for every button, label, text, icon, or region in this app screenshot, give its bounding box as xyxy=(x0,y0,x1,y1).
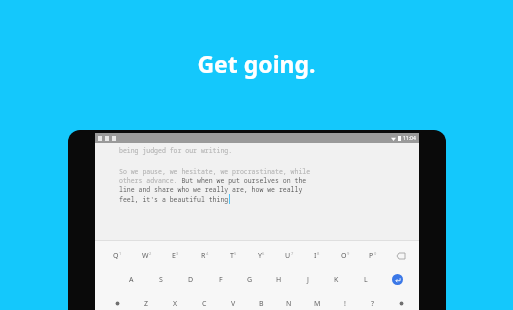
button[interactable]: K xyxy=(322,273,351,286)
staticText: 8 xyxy=(317,251,320,256)
staticText: F xyxy=(219,275,223,285)
staticText: Y xyxy=(258,251,262,261)
button[interactable]: D xyxy=(176,273,206,286)
button[interactable]: S xyxy=(146,273,176,286)
staticText: P xyxy=(369,251,374,261)
staticText: being judged for our writing. xyxy=(119,146,233,155)
button[interactable]: Y xyxy=(247,249,275,262)
staticText: line and share who we really are, how we… xyxy=(119,185,303,194)
staticText: A xyxy=(129,275,134,285)
staticText: V xyxy=(231,299,236,309)
button[interactable]: M xyxy=(303,297,331,310)
staticText: E xyxy=(172,251,176,261)
staticText: D xyxy=(188,275,194,285)
staticText: Q xyxy=(113,251,119,261)
button[interactable]: U xyxy=(275,249,303,262)
staticText: X xyxy=(173,299,178,309)
staticText: R xyxy=(201,251,206,261)
button[interactable]: Shift xyxy=(103,297,132,310)
button[interactable]: T xyxy=(219,249,247,262)
button[interactable]: ! xyxy=(331,297,359,310)
button[interactable]: R xyxy=(190,249,219,262)
staticText: 6 xyxy=(262,251,265,256)
staticText: W xyxy=(142,251,149,261)
button[interactable]: O xyxy=(331,249,359,262)
staticText: Z xyxy=(144,299,149,309)
button[interactable]: I xyxy=(303,249,331,262)
button[interactable]: E xyxy=(161,249,190,262)
staticText: K xyxy=(334,275,339,285)
staticText: ! xyxy=(344,299,346,309)
staticText: T xyxy=(230,251,234,261)
button[interactable]: L xyxy=(351,273,380,286)
staticText: H xyxy=(276,275,282,285)
button[interactable]: Z xyxy=(132,297,161,310)
staticText: N xyxy=(286,299,292,309)
staticText: M xyxy=(314,299,321,309)
staticText: 11:04 xyxy=(403,135,416,142)
staticText: 9 xyxy=(347,251,350,256)
staticText: 3 xyxy=(176,251,179,256)
staticText: I xyxy=(314,251,317,261)
staticText: L xyxy=(364,275,368,285)
staticText: 1 xyxy=(119,251,122,256)
button[interactable]: B xyxy=(247,297,275,310)
staticText: B xyxy=(259,299,264,309)
staticText: G xyxy=(247,275,253,285)
staticText: 4 xyxy=(206,251,209,256)
button[interactable]: G xyxy=(235,273,264,286)
staticText: 5 xyxy=(234,251,237,256)
button[interactable]: N xyxy=(275,297,303,310)
staticText: 2 xyxy=(149,251,152,256)
staticText: 0 xyxy=(374,251,377,256)
button[interactable]: X xyxy=(161,297,190,310)
button[interactable]: V xyxy=(219,297,247,310)
button[interactable]: Enter xyxy=(380,273,415,286)
button[interactable]: J xyxy=(293,273,322,286)
button[interactable]: Q xyxy=(103,249,132,262)
button[interactable]: P xyxy=(359,249,387,262)
staticText: C xyxy=(202,299,207,309)
staticText: U xyxy=(285,251,291,261)
staticText: others advance. But when we put ourselve… xyxy=(119,176,307,185)
button[interactable]: H xyxy=(264,273,293,286)
staticText: ? xyxy=(371,299,375,309)
staticText: S xyxy=(159,275,163,285)
staticText: O xyxy=(341,251,347,261)
staticText: J xyxy=(307,275,309,285)
button[interactable]: F xyxy=(206,273,235,286)
button[interactable]: Symbols xyxy=(387,297,415,310)
button[interactable]: Backspace xyxy=(387,249,415,262)
staticText: Get going. xyxy=(197,48,316,79)
button[interactable]: W xyxy=(132,249,161,262)
button[interactable]: ? xyxy=(359,297,387,310)
staticText: feel, it's a beautiful thing xyxy=(119,195,229,204)
staticText: 7 xyxy=(291,251,294,256)
staticText: So we pause, we hesitate, we procrastina… xyxy=(119,167,311,176)
button[interactable]: C xyxy=(190,297,219,310)
button[interactable]: A xyxy=(116,273,146,286)
